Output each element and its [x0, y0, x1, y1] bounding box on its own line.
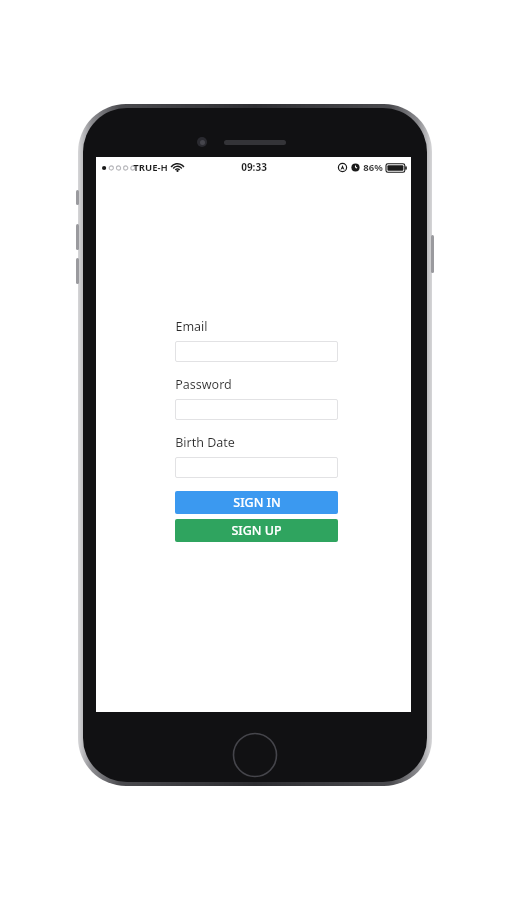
button[interactable]: Birth Date input: [175, 457, 338, 478]
button[interactable]: Password input: [175, 399, 338, 420]
button[interactable]: SIGN UP: [175, 519, 338, 542]
staticText: Password: [175, 376, 232, 393]
staticText: SIGN UP: [231, 522, 282, 539]
staticText: TRUE-H: [133, 161, 168, 174]
staticText: 09:33: [241, 160, 267, 174]
staticText: Email: [175, 318, 208, 335]
staticText: Birth Date: [175, 434, 235, 451]
staticText: SIGN IN: [233, 494, 281, 511]
button[interactable]: Email input: [175, 341, 338, 362]
button[interactable]: Home: [232, 732, 278, 778]
button[interactable]: SIGN IN: [175, 491, 338, 514]
staticText: 86%: [363, 161, 383, 174]
